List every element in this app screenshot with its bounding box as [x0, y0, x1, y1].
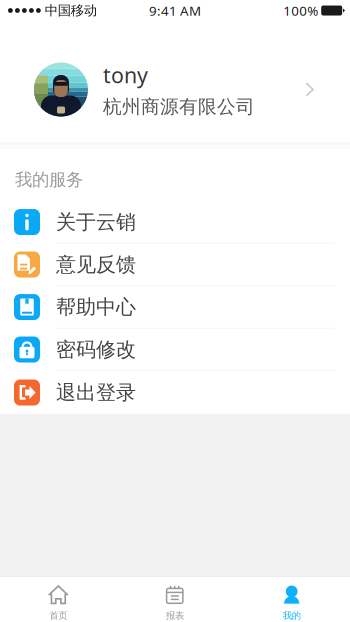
staticText: 报表 — [166, 610, 184, 621]
staticText: 杭州商源有限公司 — [103, 95, 255, 118]
button[interactable]: tony — [17, 37, 333, 142]
staticText: 关于云销 — [56, 210, 136, 234]
button[interactable]: 帮助中心 — [0, 286, 350, 329]
button[interactable]: 意见反馈 — [0, 244, 350, 286]
button[interactable]: 我的 — [233, 577, 350, 622]
staticText: 我的 — [283, 610, 301, 621]
staticText: 帮助中心 — [56, 295, 136, 319]
staticText: tony — [103, 61, 148, 89]
button[interactable]: 报表 — [117, 577, 233, 622]
staticText: 9:41 AM — [149, 2, 201, 19]
staticText: 密码修改 — [56, 337, 136, 362]
button[interactable]: 退出登录 — [0, 371, 350, 414]
staticText: 我的服务 — [15, 169, 83, 190]
staticText: 中国移动 — [45, 2, 97, 19]
button[interactable]: 首页 — [0, 577, 117, 622]
staticText: 意见反馈 — [56, 252, 136, 277]
button[interactable]: 关于云销 — [0, 201, 350, 244]
staticText: 100% — [283, 2, 318, 19]
button[interactable]: 密码修改 — [0, 329, 350, 371]
staticText: 首页 — [49, 610, 67, 621]
staticText: 退出登录 — [56, 380, 136, 405]
